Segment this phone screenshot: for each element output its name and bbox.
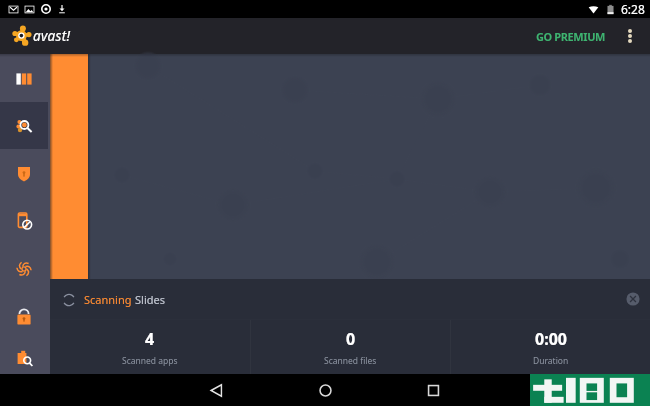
button[interactable]: Back — [196, 374, 236, 406]
button[interactable]: Home — [305, 374, 345, 406]
button[interactable]: App lock — [0, 293, 48, 341]
button[interactable]: Call blocker — [0, 197, 48, 245]
staticText: Scanning — [84, 292, 135, 307]
staticText: avast! — [33, 27, 71, 45]
button[interactable]: Recents — [413, 374, 453, 406]
staticText: Slides — [135, 292, 165, 307]
staticText: Scanned files — [324, 355, 377, 367]
staticText: 0:00 — [535, 328, 567, 350]
staticText: Scanned apps — [122, 355, 178, 367]
button[interactable]: GO PREMIUM — [526, 21, 614, 52]
button[interactable]: Shield — [0, 149, 48, 197]
button[interactable]: Dashboard — [0, 55, 48, 102]
button[interactable]: App insights — [0, 341, 48, 374]
button[interactable]: 4 — [50, 320, 250, 374]
staticText: 0 — [346, 328, 356, 350]
button[interactable]: Close — [626, 292, 640, 306]
button[interactable]: 0 — [251, 320, 450, 374]
staticText: 6:28 — [621, 1, 645, 17]
staticText: 4 — [145, 328, 155, 350]
staticText: Duration — [533, 355, 569, 367]
button[interactable]: Scan — [0, 102, 48, 149]
button[interactable]: 0:00 — [451, 320, 650, 374]
button[interactable]: Booster — [0, 245, 48, 293]
button[interactable]: More options — [614, 19, 646, 53]
staticText: GO PREMIUM — [536, 29, 606, 44]
